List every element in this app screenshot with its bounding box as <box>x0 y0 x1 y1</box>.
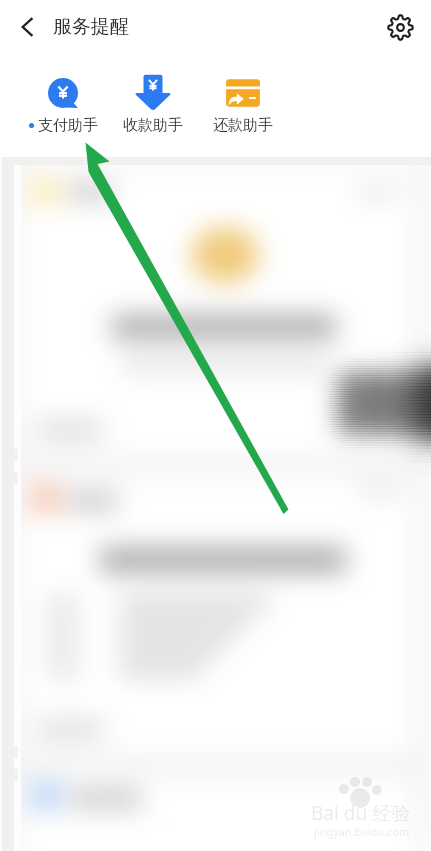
staticText: Bai du 经验 <box>311 800 411 826</box>
button[interactable]: 收款助手 <box>108 53 198 135</box>
staticText: 收款助手 <box>123 116 183 135</box>
button[interactable]: 支付助手 <box>18 53 108 135</box>
staticText: 还款助手 <box>213 116 273 135</box>
staticText: 服务提醒 <box>53 15 129 39</box>
button[interactable]: 还款助手 <box>198 53 288 135</box>
staticText: jingyan.baidu.com <box>314 824 410 839</box>
button[interactable]: Settings <box>379 6 421 48</box>
staticText: 支付助手 <box>38 116 98 135</box>
button[interactable]: Back <box>6 5 50 49</box>
